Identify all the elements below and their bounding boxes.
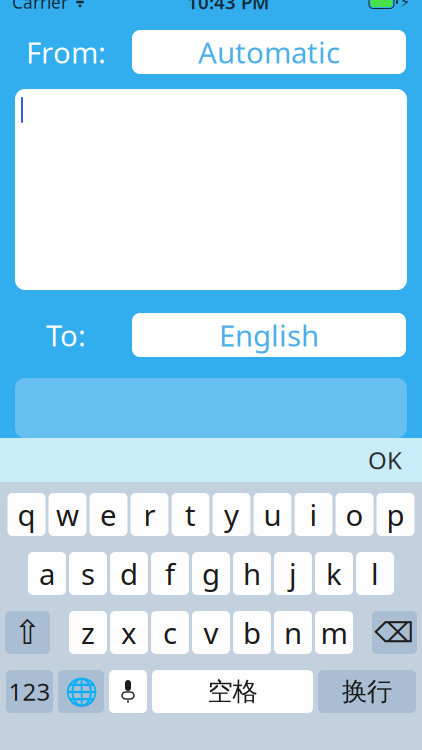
button[interactable]: g bbox=[192, 552, 230, 595]
staticText: y bbox=[224, 495, 239, 534]
staticText: z bbox=[81, 613, 95, 652]
button[interactable]: j bbox=[274, 552, 312, 595]
button[interactable]: Delete bbox=[372, 611, 417, 654]
button[interactable]: x bbox=[110, 611, 148, 654]
staticText: w bbox=[56, 495, 79, 534]
button[interactable]: OK bbox=[356, 436, 414, 484]
button[interactable]: l bbox=[356, 552, 394, 595]
button[interactable]: v bbox=[192, 611, 230, 654]
button[interactable]: n bbox=[274, 611, 312, 654]
staticText: s bbox=[81, 554, 95, 593]
staticText: 换行 bbox=[342, 676, 392, 707]
button[interactable]: Text to translate bbox=[15, 89, 407, 290]
button[interactable]: d bbox=[110, 552, 148, 595]
button[interactable]: f bbox=[151, 552, 189, 595]
button[interactable]: p bbox=[376, 493, 414, 536]
staticText: l bbox=[371, 554, 379, 593]
staticText: ⚡︎ bbox=[400, 0, 410, 10]
button[interactable]: u bbox=[253, 493, 291, 536]
staticText: c bbox=[163, 613, 177, 652]
staticText: v bbox=[203, 613, 218, 652]
button[interactable]: Automatic bbox=[132, 30, 406, 74]
button[interactable]: b bbox=[233, 611, 271, 654]
button[interactable]: e bbox=[89, 493, 127, 536]
button[interactable]: Space bbox=[152, 670, 313, 713]
staticText: u bbox=[263, 495, 281, 534]
staticText: i bbox=[309, 495, 317, 534]
staticText: ⇧ bbox=[13, 614, 41, 651]
button[interactable]: Numbers bbox=[6, 670, 53, 713]
staticText: 🌐 bbox=[64, 676, 97, 707]
staticText: a bbox=[39, 554, 55, 593]
staticText: 空格 bbox=[207, 676, 257, 707]
button[interactable]: q bbox=[7, 493, 45, 536]
button[interactable]: z bbox=[69, 611, 107, 654]
button[interactable]: English bbox=[132, 313, 406, 357]
button[interactable]: Return bbox=[318, 670, 416, 713]
button[interactable]: w bbox=[48, 493, 86, 536]
staticText: English bbox=[219, 315, 319, 354]
staticText: f bbox=[165, 554, 175, 593]
staticText: p bbox=[386, 495, 404, 534]
button[interactable]: m bbox=[315, 611, 353, 654]
staticText: q bbox=[17, 495, 35, 534]
staticText: OK bbox=[368, 444, 402, 476]
button[interactable]: h bbox=[233, 552, 271, 595]
button[interactable]: c bbox=[151, 611, 189, 654]
button[interactable]: a bbox=[28, 552, 66, 595]
staticText: ⌫ bbox=[374, 617, 414, 648]
button[interactable]: o bbox=[335, 493, 373, 536]
button[interactable]: r bbox=[130, 493, 168, 536]
staticText: h bbox=[243, 554, 261, 593]
staticText: o bbox=[345, 495, 363, 534]
button[interactable]: Shift bbox=[5, 611, 50, 654]
staticText: To: bbox=[46, 315, 86, 354]
staticText: x bbox=[121, 613, 137, 652]
staticText: t bbox=[185, 495, 196, 534]
button[interactable]: y bbox=[212, 493, 250, 536]
button[interactable]: k bbox=[315, 552, 353, 595]
staticText: r bbox=[143, 495, 155, 534]
staticText: m bbox=[320, 613, 347, 652]
staticText: Automatic bbox=[198, 32, 340, 71]
staticText: 10:43 PM bbox=[187, 0, 269, 14]
staticText: g bbox=[202, 554, 220, 593]
staticText: j bbox=[289, 554, 297, 593]
button[interactable]: Next keyboard bbox=[58, 670, 104, 713]
staticText: d bbox=[120, 554, 138, 593]
staticText: e bbox=[100, 495, 117, 534]
button[interactable]: t bbox=[171, 493, 209, 536]
staticText: b bbox=[243, 613, 261, 652]
button[interactable]: Dictate bbox=[109, 670, 147, 713]
staticText: From: bbox=[26, 32, 106, 71]
staticText: n bbox=[284, 613, 302, 652]
staticText: 123 bbox=[8, 676, 50, 707]
staticText: Carrier bbox=[12, 0, 68, 13]
button[interactable]: s bbox=[69, 552, 107, 595]
button[interactable]: i bbox=[294, 493, 332, 536]
staticText: k bbox=[326, 554, 342, 593]
